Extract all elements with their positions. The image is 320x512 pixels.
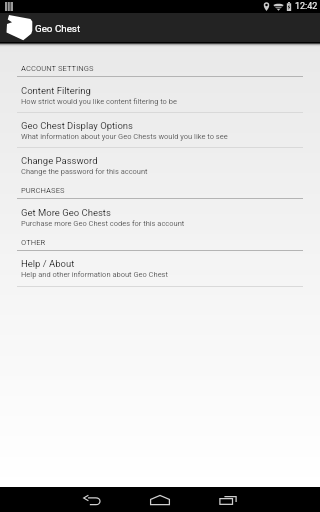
staticText: 12:42: [295, 1, 318, 12]
button[interactable]: Help / About: [0, 250, 320, 280]
staticText: Geo Chest: [35, 23, 81, 34]
button[interactable]: Geo Chest: [5, 14, 33, 41]
staticText: Change the password for this account: [21, 167, 148, 176]
button[interactable]: Home: [136, 487, 184, 512]
staticText: OTHER: [21, 238, 46, 247]
button[interactable]: Recent apps: [204, 487, 252, 512]
staticText: Get More Geo Chests: [21, 207, 111, 218]
staticText: Purchase more Geo Chest codes for this a…: [21, 219, 185, 228]
staticText: Help / About: [21, 258, 75, 269]
button[interactable]: Back: [68, 487, 116, 512]
staticText: Change Password: [21, 155, 98, 166]
staticText: ACCOUNT SETTINGS: [21, 64, 94, 73]
staticText: What information about your Geo Chests w…: [21, 132, 228, 141]
button[interactable]: Geo Chest Display Options: [0, 112, 320, 142]
button[interactable]: Get More Geo Chests: [0, 199, 320, 229]
button[interactable]: Change Password: [0, 147, 320, 177]
staticText: How strict would you like content filter…: [21, 97, 177, 106]
staticText: PURCHASES: [21, 186, 65, 195]
staticText: Content Filtering: [21, 85, 91, 96]
button[interactable]: Content Filtering: [0, 77, 320, 107]
staticText: Help and other information about Geo Che…: [21, 270, 168, 279]
staticText: Geo Chest Display Options: [21, 120, 134, 131]
